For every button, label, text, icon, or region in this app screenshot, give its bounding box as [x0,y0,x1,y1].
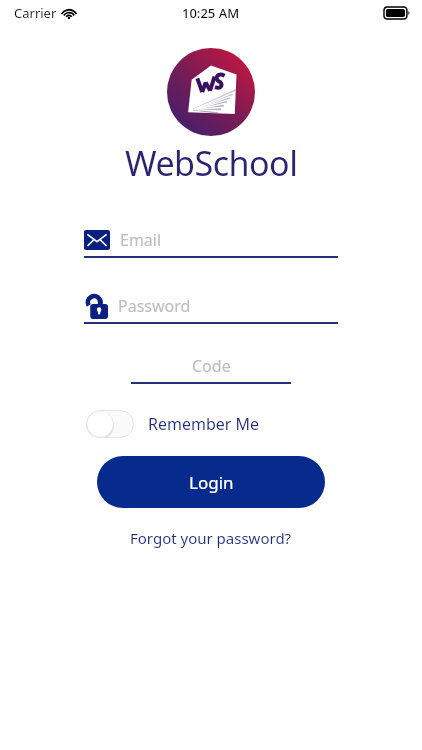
staticText: Email [120,229,162,251]
button[interactable]: Code [131,354,291,384]
staticText: Login [189,471,234,494]
staticText: WebSchool [125,140,298,186]
staticText: Code [192,355,231,377]
button[interactable]: Forgot your password? [120,524,302,552]
button[interactable]: Password [84,292,338,324]
other: Email [84,230,110,250]
staticText: Remember Me [148,413,260,435]
button[interactable]: Login [97,456,325,508]
staticText: 10:25 AM [182,4,240,22]
button[interactable]: Remember Me toggle [86,410,260,438]
staticText: Password [118,295,191,317]
other: Password [84,293,108,319]
button[interactable]: Email [84,226,338,258]
button[interactable]: Remember Me toggle [86,410,134,438]
staticText: Carrier [14,4,57,22]
staticText: Forgot your password? [130,528,292,548]
